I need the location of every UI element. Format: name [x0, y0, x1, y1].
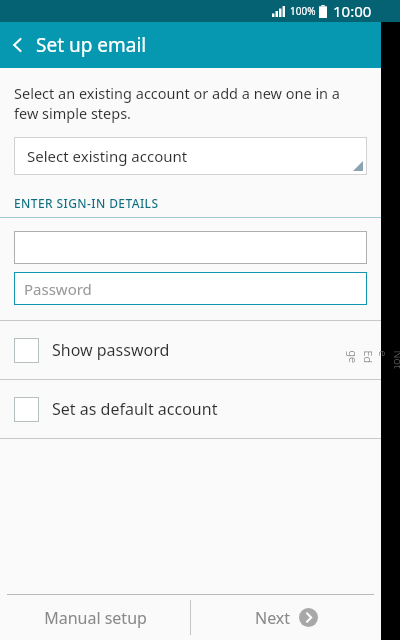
staticText: 100%	[290, 4, 316, 18]
staticText: Galaxy Note Edge	[345, 350, 400, 369]
staticText: 10:00	[333, 1, 372, 21]
staticText: Next	[255, 607, 291, 629]
staticText: Show password	[52, 339, 170, 361]
button[interactable]: Manual setup	[0, 595, 190, 640]
staticText: Manual setup	[44, 607, 147, 629]
button[interactable]	[14, 231, 367, 264]
button[interactable]: Password	[14, 272, 367, 305]
button[interactable]: Select existing account	[14, 137, 367, 175]
staticText: Set up email	[36, 32, 147, 58]
button[interactable]: Set as default account	[0, 380, 381, 438]
staticText: Password	[24, 279, 92, 299]
button[interactable]: Show password	[0, 321, 381, 379]
button[interactable]: Next	[191, 595, 381, 640]
staticText: Select an existing account or add a new …	[14, 83, 367, 123]
staticText: ENTER SIGN-IN DETAILS	[14, 195, 159, 211]
button[interactable]: Back	[0, 22, 36, 68]
staticText: Select existing account	[27, 146, 188, 166]
staticText: Set as default account	[52, 398, 218, 420]
